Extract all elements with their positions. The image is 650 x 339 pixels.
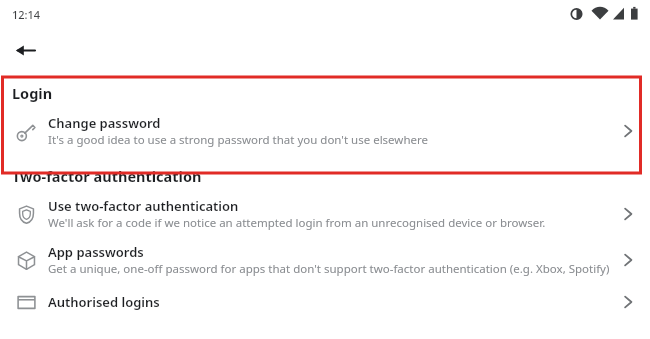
other: Window	[13, 289, 39, 315]
staticText: Change password	[48, 114, 161, 132]
button[interactable]: Window	[0, 283, 650, 321]
other: Shield	[13, 201, 39, 227]
other: Cube	[13, 247, 39, 273]
staticText: Get a unique, one-off password for apps …	[48, 261, 610, 277]
staticText: It's a good idea to use a strong passwor…	[48, 132, 429, 148]
staticText: Login	[12, 83, 53, 103]
button[interactable]: Shield	[0, 191, 650, 237]
staticText: We'll ask for a code if we notice an att…	[48, 215, 546, 231]
staticText: 12:14	[12, 7, 41, 22]
button[interactable]: Key	[0, 108, 650, 154]
button[interactable]: Back	[4, 29, 46, 71]
staticText: Authorised logins	[48, 293, 160, 311]
staticText: Use two-factor authentication	[48, 197, 239, 215]
other: Key	[13, 118, 39, 144]
staticText: Two-factor authentication	[12, 166, 202, 186]
staticText: App passwords	[48, 243, 144, 261]
button[interactable]: Cube	[0, 237, 650, 283]
